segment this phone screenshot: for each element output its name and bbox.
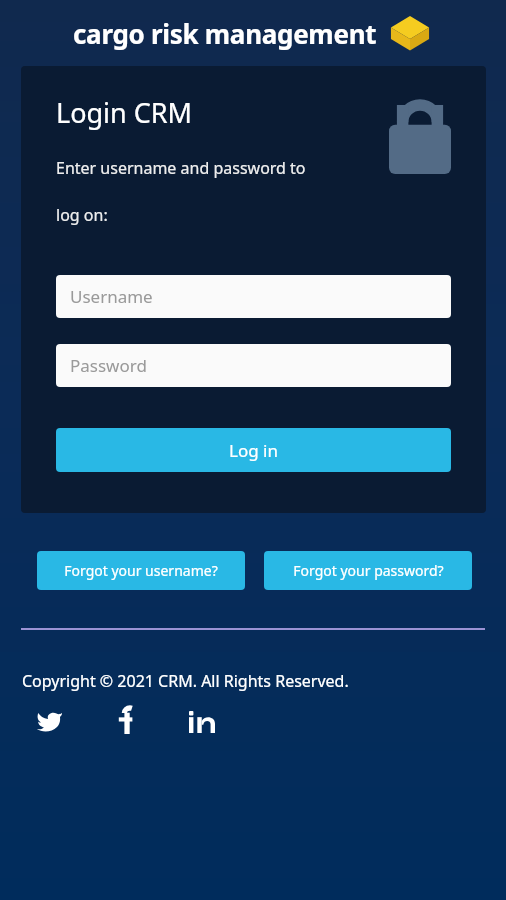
button[interactable]: Twitter [34, 706, 64, 736]
staticText: Copyright © 2021 CRM. All Rights Reserve… [22, 670, 349, 692]
staticText: Enter username and password to [56, 157, 306, 179]
staticText: Forgot your username? [64, 561, 218, 580]
staticText: Forgot your password? [293, 561, 444, 580]
button[interactable]: Facebook [111, 706, 141, 736]
staticText: Log in [229, 439, 278, 462]
staticText: Password [70, 354, 147, 377]
button[interactable]: LinkedIn [186, 706, 218, 738]
button[interactable]: Password [56, 344, 451, 387]
button[interactable]: Forgot your username? [37, 551, 245, 590]
button[interactable]: Log in [56, 428, 451, 472]
button[interactable]: Forgot your password? [264, 551, 472, 590]
staticText: Username [70, 285, 153, 308]
staticText: log on: [56, 204, 108, 226]
staticText: Login CRM [56, 94, 193, 131]
staticText: cargo risk management [73, 16, 377, 51]
button[interactable]: Username [56, 275, 451, 318]
